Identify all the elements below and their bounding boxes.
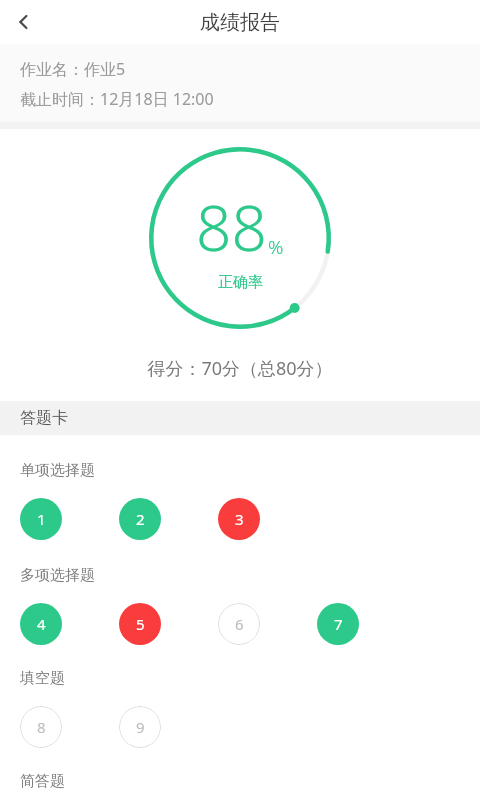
staticText: 2 [136, 509, 145, 529]
staticText: 成绩报告 [200, 10, 280, 35]
button[interactable]: 7 [317, 603, 359, 645]
staticText: 正确率 [218, 273, 263, 292]
staticText: 9 [136, 717, 145, 737]
staticText: 作业名：作业5 [20, 58, 126, 80]
button[interactable]: 5 [119, 603, 161, 645]
staticText: 截止时间：12月18日 12:00 [20, 88, 214, 110]
staticText: 得分：70分（总80分） [147, 356, 333, 381]
staticText: 答题卡 [20, 408, 68, 428]
button[interactable]: 4 [20, 603, 62, 645]
staticText: % [268, 234, 284, 260]
button[interactable]: 9 [119, 706, 161, 748]
staticText: 6 [235, 614, 244, 634]
staticText: 7 [334, 614, 343, 634]
button[interactable]: 1 [20, 498, 62, 540]
staticText: 8 [37, 717, 46, 737]
staticText: 1 [37, 509, 46, 529]
button[interactable]: 8 [20, 706, 62, 748]
staticText: 多项选择题 [20, 566, 95, 585]
staticText: 4 [37, 614, 46, 634]
staticText: 填空题 [20, 669, 65, 688]
button[interactable]: 6 [218, 603, 260, 645]
button[interactable]: Back [0, 0, 48, 44]
staticText: 单项选择题 [20, 461, 95, 480]
staticText: 简答题 [20, 772, 65, 791]
button[interactable]: 3 [218, 498, 260, 540]
button[interactable]: 2 [119, 498, 161, 540]
staticText: 88 [196, 185, 267, 269]
staticText: 5 [136, 614, 145, 634]
staticText: 3 [235, 509, 244, 529]
